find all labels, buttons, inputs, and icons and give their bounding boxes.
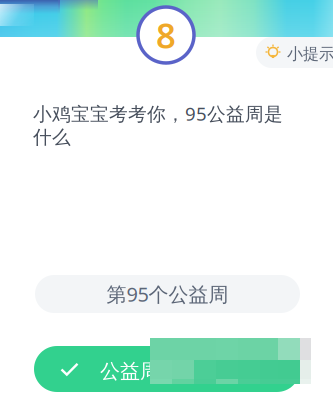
staticText: 公益周主题是 — [100, 359, 220, 384]
button[interactable]: 公益周主题是 — [34, 346, 300, 392]
button[interactable]: 第95个公益周 — [35, 275, 300, 313]
staticText: 小提示 — [287, 44, 333, 64]
staticText: 第95个公益周 — [106, 281, 228, 307]
staticText: 小鸡宝宝考考你，95公益周是什么 — [33, 101, 283, 149]
staticText: 8 — [156, 12, 176, 58]
button[interactable]: 小提示 — [256, 37, 333, 68]
